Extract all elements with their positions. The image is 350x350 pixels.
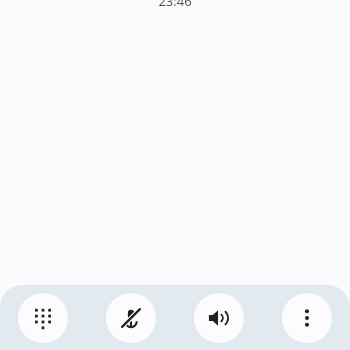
button[interactable]: Unmute microphone	[106, 293, 156, 343]
button[interactable]: More options	[282, 293, 332, 343]
button[interactable]: Speaker	[194, 293, 244, 343]
staticText: 23:46	[158, 0, 192, 10]
button[interactable]: Dialpad	[18, 293, 68, 343]
